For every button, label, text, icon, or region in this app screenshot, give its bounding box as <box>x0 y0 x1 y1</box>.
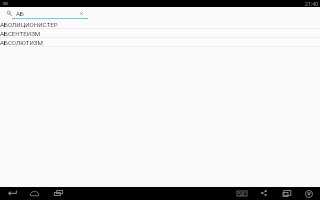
other: Clear query <box>80 12 83 15</box>
button[interactable]: Share <box>255 187 275 200</box>
other: Search <box>7 11 12 16</box>
button[interactable]: Keyboard <box>231 187 253 200</box>
staticText: 21:40 <box>305 0 319 7</box>
button[interactable]: Back <box>2 187 24 200</box>
staticText: АБ <box>16 10 24 17</box>
button[interactable]: Recent apps <box>47 187 69 200</box>
button[interactable]: АБОЛИЦИОНИСТЕР <box>0 20 320 29</box>
staticText: АБОЛИЦИОНИСТЕР <box>0 21 58 28</box>
button[interactable]: Home <box>24 187 45 200</box>
button[interactable]: Hide navigation bar <box>299 187 320 200</box>
button[interactable]: АБСЕНТЕИЗМ <box>0 29 320 38</box>
button[interactable]: АБСОЛЮТИЗМ <box>0 38 320 47</box>
staticText: АБСОЛЮТИЗМ <box>0 39 43 46</box>
button[interactable]: Search <box>0 0 320 20</box>
staticText: АБСЕНТЕИЗМ <box>0 30 41 37</box>
button[interactable]: Screenshot <box>277 187 298 200</box>
